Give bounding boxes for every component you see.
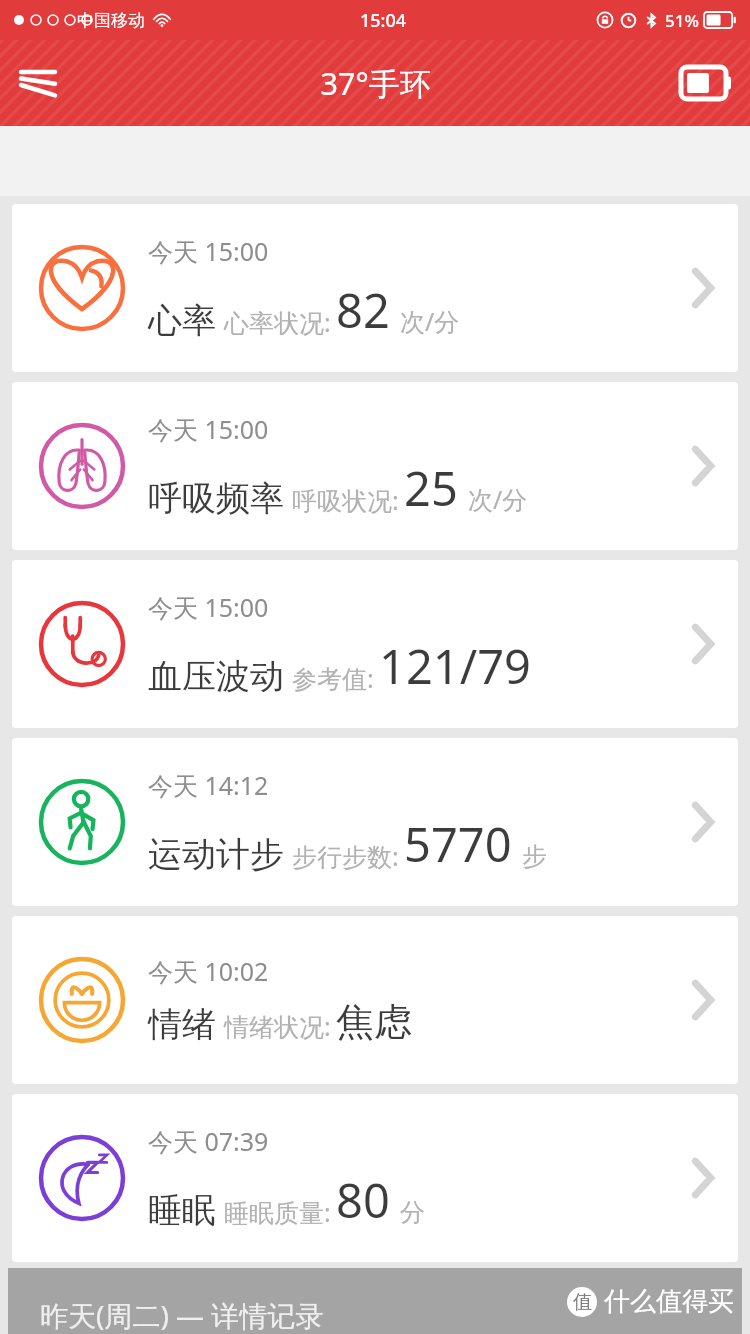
staticText: 情绪状况: <box>224 1009 331 1043</box>
staticText: 37°手环 <box>320 62 431 104</box>
button[interactable]: 今天 10:02 <box>12 916 738 1084</box>
staticText: 中国移动 <box>77 10 145 31</box>
staticText: 82 <box>336 278 390 342</box>
staticText: 15:04 <box>360 8 407 33</box>
button[interactable]: 今天 14:12 <box>12 738 738 906</box>
staticText: 血压波动 <box>148 655 284 698</box>
staticText: 今天 15:00 <box>148 412 269 446</box>
button[interactable]: 今天 07:39 <box>12 1094 738 1262</box>
staticText: 什么值得买 <box>604 1285 734 1318</box>
staticText: 参考值: <box>292 661 374 695</box>
staticText: 今天 10:02 <box>148 954 269 988</box>
staticText: 呼吸频率 <box>148 477 284 520</box>
button[interactable]: 今天 15:00 <box>12 382 738 550</box>
staticText: 51% <box>665 9 699 32</box>
button[interactable]: 今天 15:00 <box>12 560 738 728</box>
staticText: 昨天(周二) — 详情记录 <box>40 1296 324 1334</box>
staticText: 次/分 <box>468 482 528 516</box>
staticText: 呼吸状况: <box>292 483 399 517</box>
button[interactable]: Battery <box>676 53 736 113</box>
button[interactable]: Menu <box>10 55 66 111</box>
staticText: 25 <box>404 456 458 520</box>
staticText: 次/分 <box>400 304 460 338</box>
staticText: 今天 15:00 <box>148 234 269 268</box>
staticText: 121/79 <box>379 634 531 698</box>
staticText: 5770 <box>404 812 512 876</box>
staticText: 今天 15:00 <box>148 590 269 624</box>
staticText: 焦虑 <box>336 998 412 1046</box>
staticText: 心率 <box>148 299 216 342</box>
staticText: 分 <box>400 1197 425 1228</box>
staticText: 今天 14:12 <box>148 768 269 802</box>
staticText: 今天 07:39 <box>148 1124 269 1158</box>
staticText: 运动计步 <box>148 833 284 876</box>
staticText: 步 <box>522 841 547 872</box>
staticText: 心率状况: <box>224 305 331 339</box>
button[interactable]: 昨天(周二) — 详情记录 <box>8 1268 742 1334</box>
staticText: 步行步数: <box>292 839 399 873</box>
staticText: 睡眠质量: <box>224 1195 331 1229</box>
button[interactable]: 今天 15:00 <box>12 204 738 372</box>
staticText: 睡眠 <box>148 1189 216 1232</box>
staticText: 80 <box>336 1168 390 1232</box>
staticText: 值 <box>573 1290 592 1314</box>
staticText: 情绪 <box>148 1003 216 1046</box>
